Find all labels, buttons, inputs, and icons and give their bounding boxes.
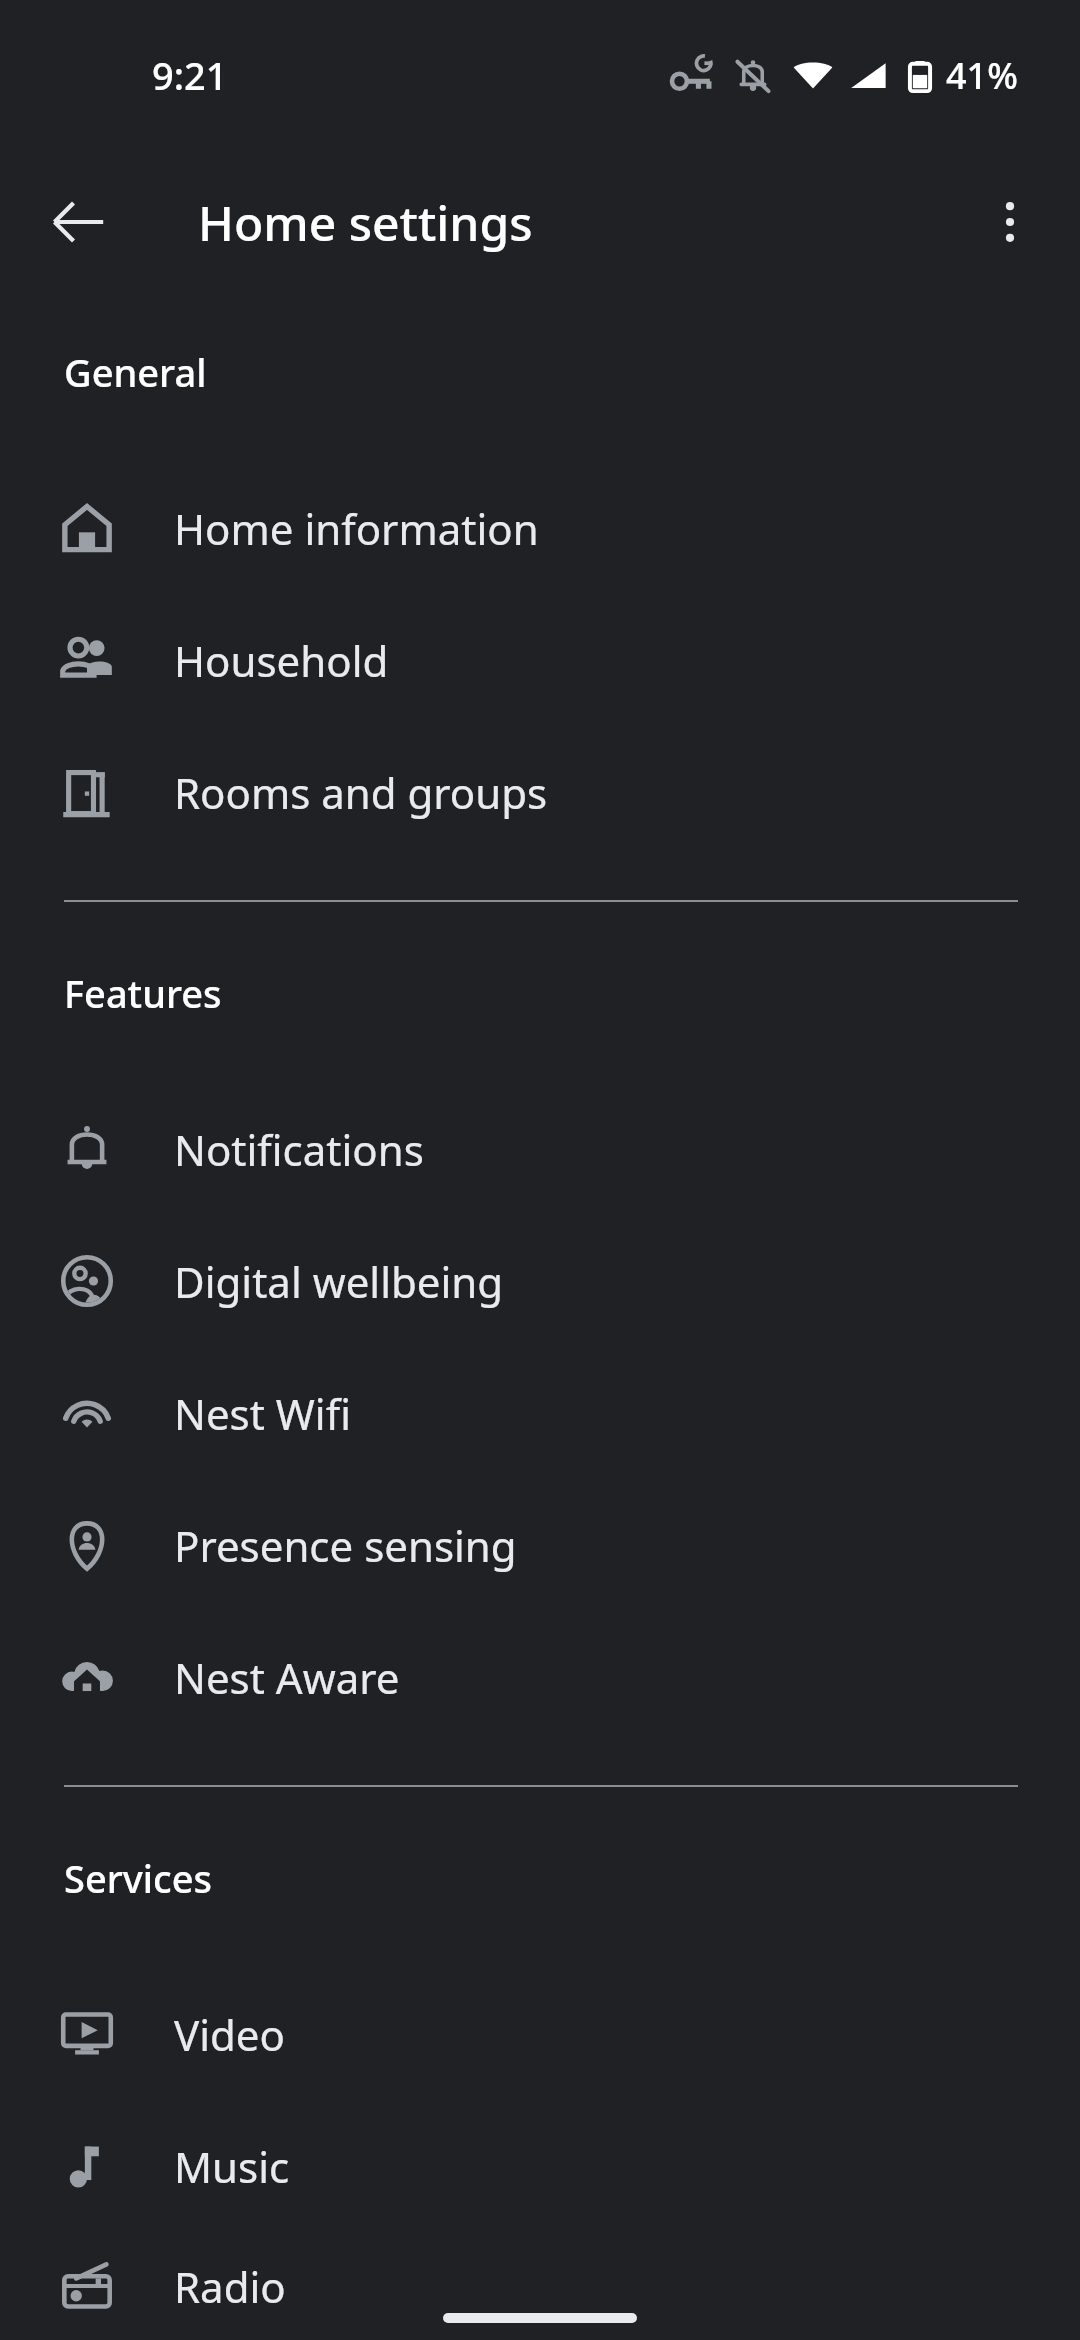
staticText: Features (64, 967, 222, 1019)
button[interactable]: Radio (0, 2232, 1080, 2340)
staticText: Music (174, 2138, 290, 2195)
button[interactable]: Digital wellbeing (0, 1215, 1080, 1347)
button[interactable]: Music (0, 2100, 1080, 2232)
staticText: General (64, 346, 207, 398)
staticText: Nest Wifi (174, 1385, 351, 1442)
staticText: Digital wellbeing (174, 1253, 504, 1310)
button[interactable]: Home information (0, 462, 1080, 594)
staticText: Presence sensing (174, 1517, 517, 1574)
button[interactable]: Back (30, 174, 126, 270)
staticText: Rooms and groups (174, 764, 548, 821)
button[interactable]: More options (962, 174, 1058, 270)
button[interactable]: Nest Aware (0, 1611, 1080, 1743)
staticText: Notifications (174, 1121, 424, 1178)
staticText: Home information (174, 500, 539, 557)
staticText: Radio (174, 2258, 286, 2315)
button[interactable]: Presence sensing (0, 1479, 1080, 1611)
staticText: 41% (946, 51, 1018, 100)
staticText: Home settings (198, 190, 533, 255)
button[interactable]: Household (0, 594, 1080, 726)
button[interactable]: Notifications (0, 1083, 1080, 1215)
button[interactable]: Nest Wifi (0, 1347, 1080, 1479)
staticText: Services (64, 1852, 213, 1904)
staticText: Video (174, 2006, 285, 2063)
button[interactable]: Rooms and groups (0, 726, 1080, 858)
button[interactable]: Video (0, 1968, 1080, 2100)
staticText: 9:21 (152, 49, 228, 101)
staticText: Household (174, 632, 389, 689)
staticText: Nest Aware (174, 1649, 400, 1706)
